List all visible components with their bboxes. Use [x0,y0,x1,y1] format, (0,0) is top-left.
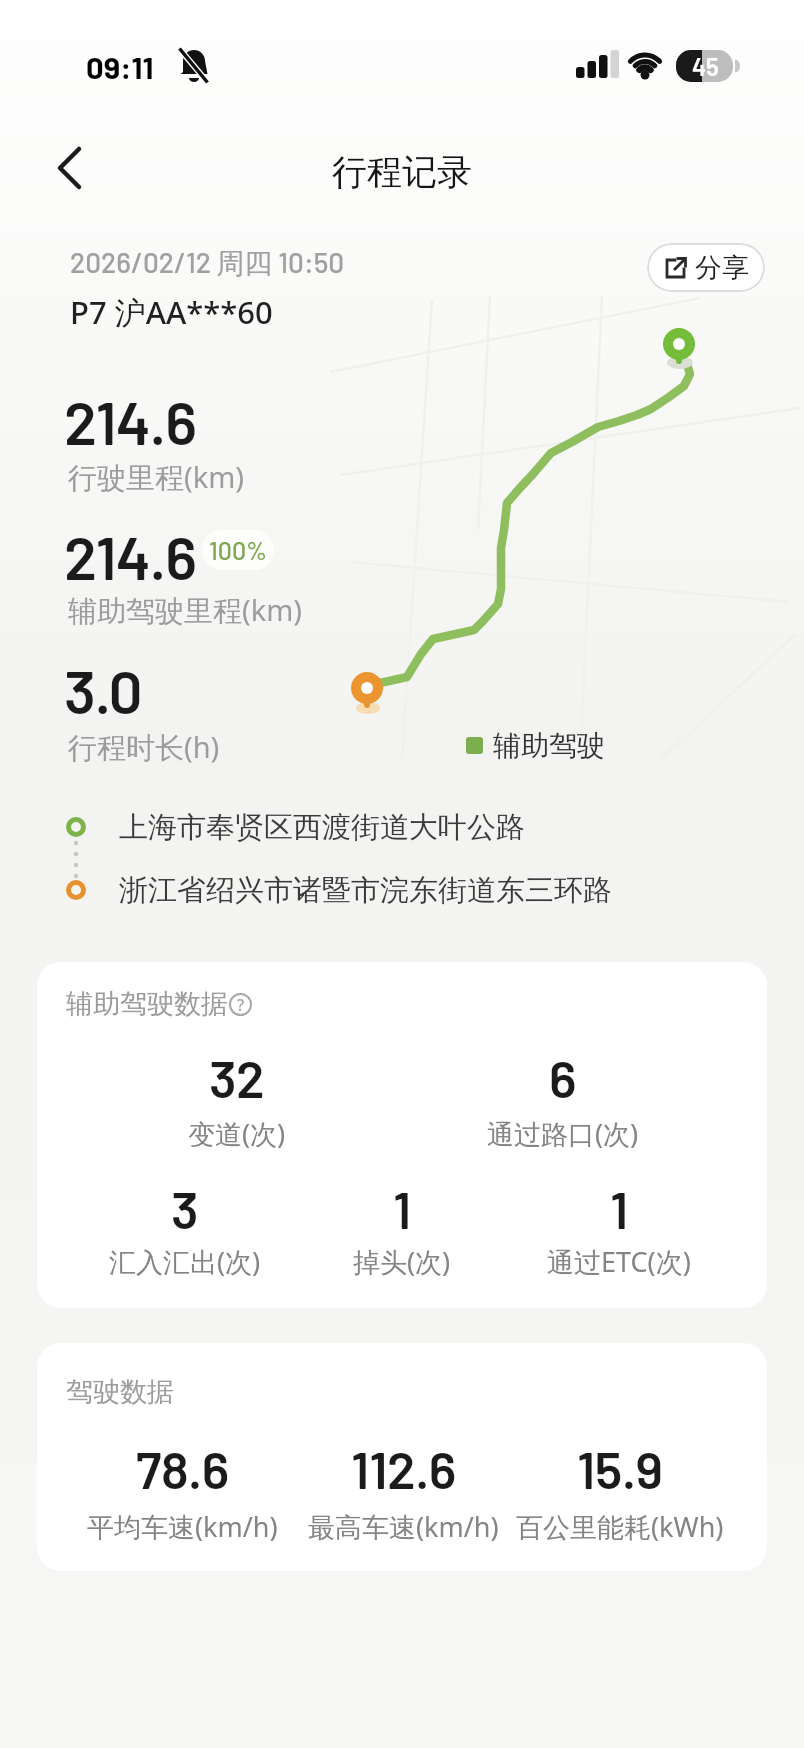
staticText: 行驶里程(km) [68,457,245,497]
staticText: 通过ETC(次) [547,1243,691,1280]
staticText: 45 [692,52,719,81]
staticText: 浙江省绍兴市诸暨市浣东街道东三环路 [119,872,612,909]
staticText: 辅助驾驶里程(km) [68,590,303,630]
staticText: 1 [610,1177,628,1239]
staticText: 6 [549,1046,577,1108]
staticText: 09:11 [86,48,154,85]
staticText: P7 沪AA***60 [70,291,273,333]
staticText: 214.6 [64,385,196,457]
staticText: 3.0 [64,654,142,726]
staticText: 百公里能耗(kWh) [516,1508,724,1545]
staticText: 掉头(次) [353,1243,451,1280]
staticText: 78.6 [136,1437,229,1499]
staticText: 2026/02/12 周四 10:50 [70,245,345,281]
staticText: 最高车速(km/h) [308,1508,499,1545]
staticText: 214.6 [64,520,196,592]
staticText: 辅助驾驶数据 [66,987,228,1021]
staticText: 行程记录 [332,150,472,194]
staticText: 上海市奉贤区西渡街道大叶公路 [119,809,525,846]
staticText: 100% [209,535,268,565]
button[interactable]: ? [229,993,252,1016]
staticText: 驾驶数据 [66,1375,174,1409]
staticText: 32 [209,1046,265,1108]
button[interactable]: 分享 [647,243,765,292]
staticText: 行程时长(h) [68,727,220,767]
staticText: 通过路口(次) [487,1115,639,1152]
staticText: 112.6 [351,1437,456,1499]
button[interactable] [44,140,100,196]
staticText: 汇入汇出(次) [109,1243,261,1280]
staticText: 变道(次) [188,1115,286,1152]
staticText: 平均车速(km/h) [87,1508,278,1545]
staticText: 1 [393,1177,411,1239]
staticText: 3 [171,1177,199,1239]
staticText: 辅助驾驶 [493,728,605,763]
staticText: 分享 [695,251,749,285]
staticText: 15.9 [577,1437,663,1499]
staticText: ? [237,994,245,1016]
